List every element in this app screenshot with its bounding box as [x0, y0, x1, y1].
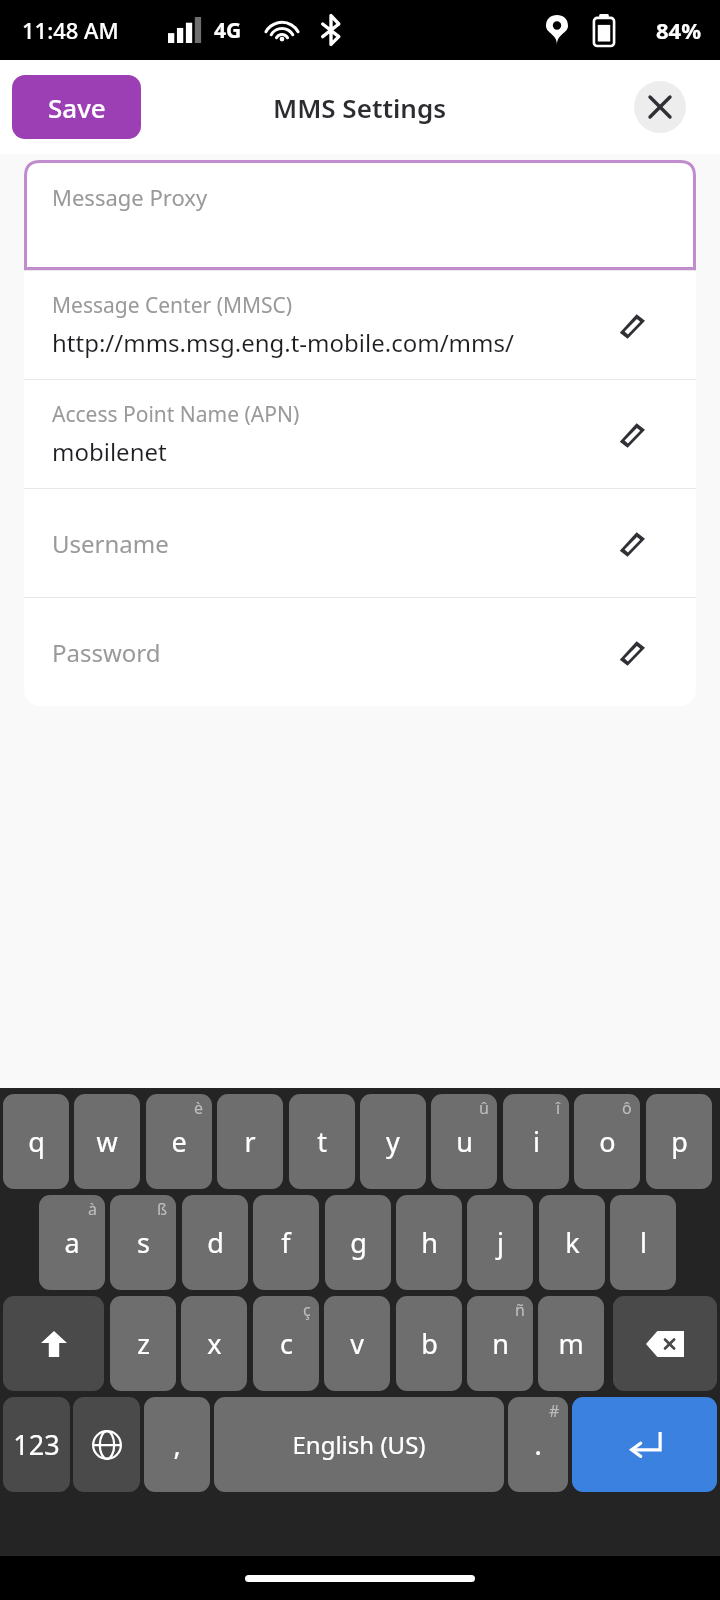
- button[interactable]: o: [574, 1094, 640, 1189]
- staticText: Message Proxy: [52, 182, 208, 212]
- button[interactable]: Save: [12, 75, 141, 139]
- staticText: n: [492, 1325, 509, 1362]
- staticText: #: [549, 1400, 560, 1422]
- staticText: f: [281, 1224, 291, 1261]
- button[interactable]: Shift: [3, 1296, 104, 1391]
- button[interactable]: Access Point Name (APN): [24, 380, 696, 488]
- staticText: k: [565, 1224, 580, 1261]
- staticText: 84%: [656, 15, 702, 45]
- button[interactable]: d: [182, 1195, 248, 1290]
- button[interactable]: Edit Message Center (MMSC): [616, 308, 650, 342]
- staticText: http://mms.msg.eng.t-mobile.com/mms/: [52, 326, 514, 359]
- staticText: ß: [157, 1198, 168, 1220]
- staticText: Save: [48, 90, 106, 125]
- button[interactable]: ,: [144, 1397, 210, 1492]
- staticText: u: [456, 1123, 473, 1160]
- button[interactable]: Enter: [572, 1397, 717, 1492]
- staticText: .: [534, 1426, 542, 1463]
- button[interactable]: Username: [24, 489, 696, 597]
- staticText: z: [137, 1325, 150, 1362]
- staticText: v: [350, 1325, 364, 1362]
- button[interactable]: z: [110, 1296, 176, 1391]
- staticText: o: [599, 1123, 616, 1160]
- staticText: English (US): [292, 1428, 426, 1461]
- button[interactable]: b: [396, 1296, 462, 1391]
- staticText: c: [280, 1325, 293, 1362]
- staticText: ñ: [515, 1299, 525, 1321]
- button[interactable]: English (US): [214, 1397, 504, 1492]
- button[interactable]: a: [39, 1195, 105, 1290]
- staticText: r: [244, 1123, 256, 1160]
- button[interactable]: .: [508, 1397, 568, 1492]
- button[interactable]: q: [3, 1094, 69, 1189]
- button[interactable]: p: [646, 1094, 712, 1189]
- button[interactable]: Message Center (MMSC): [24, 271, 696, 379]
- staticText: ç: [303, 1299, 311, 1321]
- button[interactable]: w: [74, 1094, 140, 1189]
- button[interactable]: Change language: [73, 1397, 140, 1492]
- staticText: à: [88, 1198, 97, 1220]
- staticText: j: [497, 1224, 504, 1261]
- staticText: Message Center (MMSC): [52, 291, 293, 320]
- button[interactable]: Edit Password: [616, 635, 650, 669]
- button[interactable]: e: [146, 1094, 212, 1189]
- button[interactable]: 123: [3, 1397, 70, 1492]
- button[interactable]: l: [610, 1195, 676, 1290]
- button[interactable]: k: [539, 1195, 605, 1290]
- staticText: Access Point Name (APN): [52, 400, 300, 429]
- staticText: a: [64, 1224, 80, 1261]
- staticText: mobilenet: [52, 435, 167, 468]
- staticText: i: [533, 1123, 540, 1160]
- button[interactable]: s: [110, 1195, 176, 1290]
- staticText: g: [350, 1224, 367, 1261]
- button[interactable]: Password: [24, 598, 696, 706]
- staticText: b: [421, 1325, 438, 1362]
- staticText: e: [171, 1123, 187, 1160]
- staticText: h: [421, 1224, 438, 1261]
- staticText: y: [386, 1123, 400, 1160]
- staticText: t: [317, 1123, 327, 1160]
- staticText: î: [556, 1097, 561, 1119]
- button[interactable]: h: [396, 1195, 462, 1290]
- button[interactable]: f: [253, 1195, 319, 1290]
- button[interactable]: Close: [634, 81, 686, 133]
- button[interactable]: r: [217, 1094, 283, 1189]
- button[interactable]: u: [431, 1094, 497, 1189]
- button[interactable]: y: [360, 1094, 426, 1189]
- staticText: 11:48 AM: [22, 15, 119, 45]
- button[interactable]: x: [181, 1296, 247, 1391]
- button[interactable]: Backspace: [613, 1296, 717, 1391]
- button[interactable]: Edit Username: [616, 526, 650, 560]
- staticText: û: [479, 1097, 489, 1119]
- staticText: m: [558, 1325, 584, 1362]
- staticText: ,: [173, 1426, 181, 1463]
- button[interactable]: Edit Access Point Name (APN): [616, 417, 650, 451]
- button[interactable]: i: [503, 1094, 569, 1189]
- button[interactable]: v: [324, 1296, 390, 1391]
- button[interactable]: n: [467, 1296, 533, 1391]
- button[interactable]: Message Proxy: [24, 160, 696, 270]
- staticText: l: [640, 1224, 647, 1261]
- button[interactable]: g: [325, 1195, 391, 1290]
- staticText: s: [137, 1224, 150, 1261]
- staticText: q: [28, 1123, 45, 1160]
- button[interactable]: m: [538, 1296, 604, 1391]
- staticText: w: [96, 1123, 118, 1160]
- button[interactable]: t: [289, 1094, 355, 1189]
- staticText: 4G: [214, 16, 242, 45]
- staticText: è: [194, 1097, 204, 1119]
- staticText: ô: [622, 1097, 632, 1119]
- staticText: p: [671, 1123, 688, 1160]
- staticText: 123: [13, 1426, 60, 1463]
- staticText: Username: [52, 527, 169, 560]
- button[interactable]: c: [253, 1296, 319, 1391]
- staticText: d: [207, 1224, 224, 1261]
- staticText: x: [207, 1325, 222, 1362]
- staticText: MMS Settings: [273, 90, 447, 125]
- button[interactable]: j: [467, 1195, 533, 1290]
- staticText: Password: [52, 636, 161, 669]
